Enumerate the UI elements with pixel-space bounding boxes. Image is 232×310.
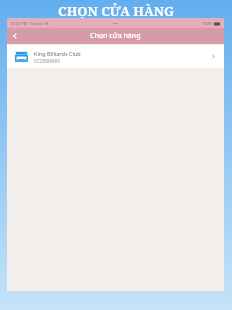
- staticText: King Billiards Club: [34, 50, 81, 57]
- button[interactable]: King Billiards Club: [7, 45, 224, 68]
- staticText: Chọn cửa hàng: [90, 31, 141, 41]
- staticText: CHỌN CỬA HÀNG: [0, 2, 232, 20]
- staticText: 10:55 PM Tue Jan 18: [10, 21, 49, 26]
- staticText: 0723999999: [34, 58, 60, 64]
- staticText: 100%: [202, 21, 213, 26]
- staticText: •••: [113, 21, 118, 26]
- button[interactable]: Back: [7, 28, 23, 44]
